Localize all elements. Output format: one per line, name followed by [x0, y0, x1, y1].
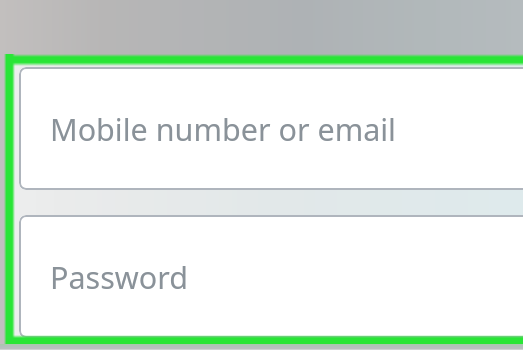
staticText: Mobile number or email: [50, 108, 396, 150]
button[interactable]: Password: [19, 215, 523, 338]
staticText: Password: [50, 256, 188, 298]
button[interactable]: Mobile number or email: [19, 67, 523, 190]
